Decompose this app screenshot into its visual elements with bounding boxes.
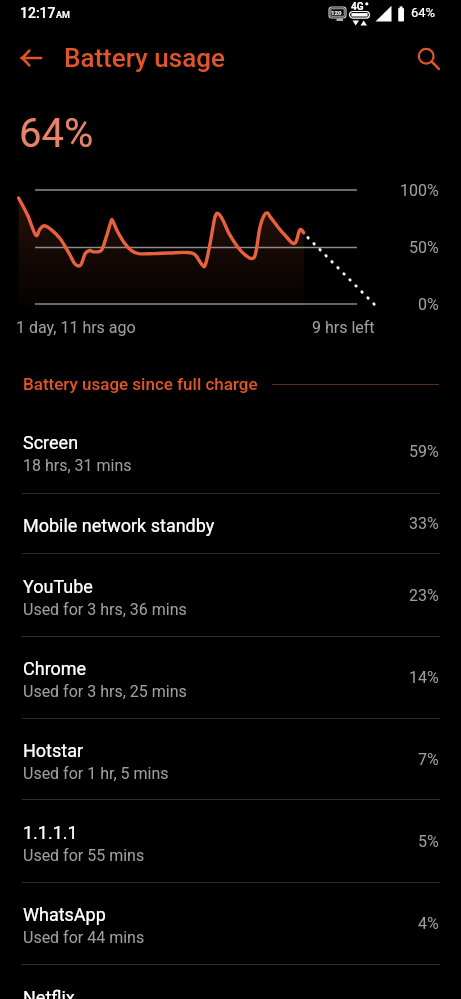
button[interactable]: Hotstar bbox=[0, 719, 461, 799]
staticText: 14% bbox=[409, 668, 439, 687]
staticText: 1.1.1.1 bbox=[23, 822, 78, 843]
staticText: 50% bbox=[409, 238, 439, 257]
staticText: 1 day, 11 hrs ago bbox=[16, 318, 136, 337]
staticText: 4G bbox=[351, 1, 364, 13]
staticText: Used for 44 mins bbox=[23, 928, 145, 947]
staticText: 18 hrs, 31 mins bbox=[23, 456, 132, 475]
staticText: 5% bbox=[418, 832, 439, 851]
staticText: Chrome bbox=[23, 658, 87, 679]
staticText: Used for 3 hrs, 25 mins bbox=[23, 682, 187, 701]
staticText: 0% bbox=[418, 295, 439, 314]
button[interactable]: Mobile network standby bbox=[0, 494, 461, 553]
staticText: Battery usage bbox=[64, 43, 225, 73]
staticText: Screen bbox=[23, 432, 79, 453]
button[interactable]: YouTube bbox=[0, 554, 461, 636]
staticText: 100% bbox=[400, 181, 439, 200]
staticText: 23% bbox=[409, 586, 439, 605]
staticText: 120 bbox=[331, 9, 342, 16]
staticText: YouTube bbox=[23, 576, 93, 597]
staticText: Used for 3 hrs, 36 mins bbox=[23, 600, 187, 619]
staticText: 59% bbox=[409, 442, 439, 461]
staticText: 12:17 bbox=[20, 5, 56, 21]
button[interactable]: 1.1.1.1 bbox=[0, 800, 461, 882]
staticText: 64% bbox=[411, 5, 436, 20]
staticText: Netflix bbox=[23, 987, 75, 999]
staticText: 64% bbox=[19, 110, 94, 157]
staticText: Used for 1 hr, 5 mins bbox=[23, 764, 169, 783]
button[interactable]: Chrome bbox=[0, 637, 461, 718]
button[interactable]: Back bbox=[10, 37, 52, 79]
staticText: WhatsApp bbox=[23, 904, 106, 925]
staticText: Used for 55 mins bbox=[23, 846, 145, 865]
staticText: Mobile network standby bbox=[23, 515, 215, 536]
staticText: Battery usage since full charge bbox=[23, 374, 258, 394]
button[interactable]: Screen bbox=[0, 410, 461, 493]
button[interactable]: Search bbox=[407, 37, 449, 79]
staticText: 33% bbox=[409, 514, 439, 533]
staticText: AM bbox=[56, 10, 70, 21]
staticText: 9 hrs left bbox=[312, 318, 375, 337]
staticText: Hotstar bbox=[23, 740, 84, 761]
button[interactable]: Netflix bbox=[0, 965, 461, 999]
button[interactable]: WhatsApp bbox=[0, 883, 461, 964]
staticText: 7% bbox=[418, 750, 439, 769]
staticText: 4% bbox=[418, 914, 439, 933]
